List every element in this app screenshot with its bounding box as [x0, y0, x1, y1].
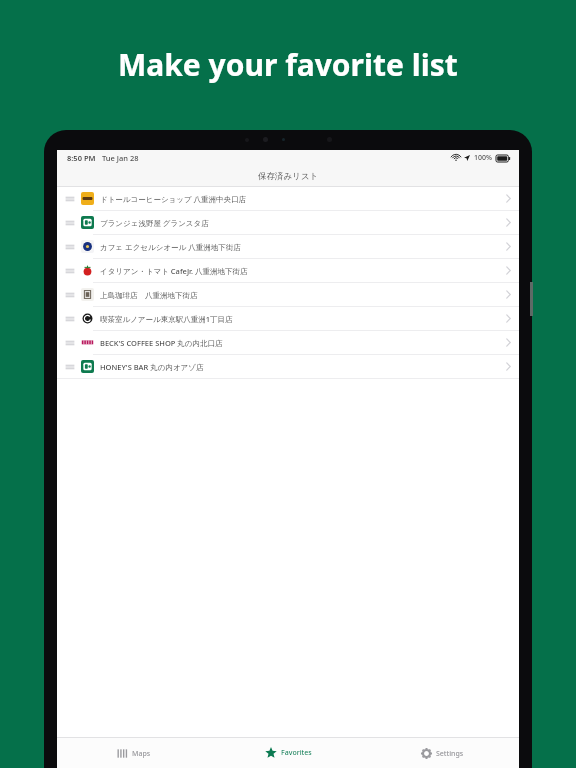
- button[interactable]: Reorder: [57, 235, 519, 258]
- other: Open: [506, 290, 511, 299]
- other: Reorder: [66, 363, 74, 371]
- other: Reorder: [66, 291, 74, 299]
- button[interactable]: Reorder: [57, 331, 519, 354]
- button[interactable]: Reorder: [57, 307, 519, 330]
- staticText: Make your favorite list: [118, 44, 458, 85]
- other: Reorder: [66, 267, 74, 275]
- staticText: 保存済みリスト: [258, 171, 319, 182]
- other: Open: [506, 338, 511, 347]
- button[interactable]: Reorder: [57, 283, 519, 306]
- button[interactable]: Favorites: [211, 738, 365, 768]
- button[interactable]: Settings: [365, 738, 519, 768]
- staticText: ブランジェ浅野屋 グランスタ店: [100, 218, 506, 228]
- button[interactable]: Reorder: [57, 259, 519, 282]
- staticText: HONEY'S BAR 丸の内オアゾ店: [100, 362, 506, 372]
- other: Reorder: [66, 195, 74, 203]
- other: Reorder: [66, 315, 74, 323]
- staticText: Maps: [132, 749, 151, 759]
- staticText: Tue Jan 28: [102, 153, 139, 163]
- staticText: Settings: [436, 749, 464, 759]
- staticText: 上島珈琲店 八重洲地下街店: [100, 290, 506, 300]
- other: Reorder: [66, 243, 74, 251]
- button[interactable]: Reorder: [57, 187, 519, 210]
- staticText: カフェ エクセルシオール 八重洲地下街店: [100, 242, 506, 252]
- staticText: BECK'S COFFEE SHOP 丸の内北口店: [100, 338, 506, 348]
- other: Open: [506, 242, 511, 251]
- staticText: 喫茶室ルノアール東京駅八重洲1丁目店: [100, 314, 506, 324]
- other: Reorder: [66, 219, 74, 227]
- button[interactable]: Reorder: [57, 355, 519, 378]
- staticText: ドトールコーヒーショップ 八重洲中央口店: [100, 194, 506, 204]
- staticText: Favorites: [281, 748, 312, 758]
- button[interactable]: Maps: [57, 738, 211, 768]
- other: Open: [506, 218, 511, 227]
- other: Open: [506, 314, 511, 323]
- other: Reorder: [66, 339, 74, 347]
- other: Open: [506, 194, 511, 203]
- staticText: イタリアン・トマト CafeJr. 八重洲地下街店: [100, 266, 506, 276]
- staticText: 8:50 PM: [67, 153, 96, 163]
- staticText: 100%: [474, 153, 492, 163]
- other: Open: [506, 362, 511, 371]
- other: Open: [506, 266, 511, 275]
- button[interactable]: Reorder: [57, 211, 519, 234]
